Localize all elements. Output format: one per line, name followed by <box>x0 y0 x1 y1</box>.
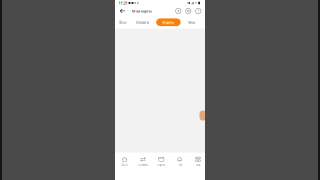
staticText: Visa <box>188 20 195 25</box>
staticText: Ещё <box>196 163 200 167</box>
button[interactable]: Back <box>118 8 127 14</box>
staticText: Оплата <box>136 20 149 25</box>
button[interactable]: Все <box>117 18 128 26</box>
button[interactable]: Search <box>175 8 181 14</box>
staticText: Карты <box>162 20 174 25</box>
button[interactable]: Sort <box>185 8 191 14</box>
staticText: Чат <box>178 163 182 167</box>
button[interactable]: Оплата <box>134 18 151 26</box>
button[interactable]: Дом <box>115 152 134 180</box>
button[interactable]: Карты <box>156 18 181 26</box>
button[interactable]: History <box>195 8 201 14</box>
staticText: Мои карты <box>132 8 152 14</box>
staticText: Все <box>119 20 126 25</box>
button[interactable]: Чат <box>170 152 189 180</box>
staticText: 11:21 <box>118 0 127 6</box>
button[interactable]: Visa <box>186 18 197 26</box>
staticText: Дом <box>122 163 128 167</box>
button[interactable]: Платежи <box>134 152 152 180</box>
button[interactable]: Ещё <box>189 152 207 180</box>
staticText: Платежи <box>137 163 148 167</box>
staticText: Карты <box>157 163 165 167</box>
button[interactable]: Карты <box>152 152 170 180</box>
